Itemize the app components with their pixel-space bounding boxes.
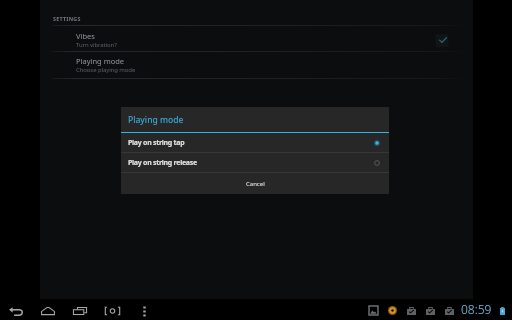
staticText: Play on string tap [128,138,371,148]
button[interactable]: Back [5,299,27,320]
button[interactable]: Recent apps [69,299,91,320]
staticText: 08:59 [461,301,492,317]
button[interactable]: Vibes [40,27,473,52]
staticText: SETTINGS [53,15,81,22]
staticText: Playing mode [76,56,125,66]
staticText: Vibes [76,31,95,41]
button[interactable]: Play on string tap [121,133,389,152]
staticText: Play on string release [128,158,371,168]
button[interactable]: Screenshot [101,299,123,320]
button[interactable]: More options [133,299,155,320]
button[interactable]: Playing mode [40,52,473,78]
staticText: Turn vibration? [76,41,117,49]
staticText: Cancel [246,180,265,188]
staticText: Choose playing mode [76,66,136,74]
staticText: Playing mode [128,114,184,126]
button[interactable]: Cancel [121,173,389,194]
button[interactable]: Home [37,299,59,320]
button[interactable]: Play on string release [121,153,389,172]
